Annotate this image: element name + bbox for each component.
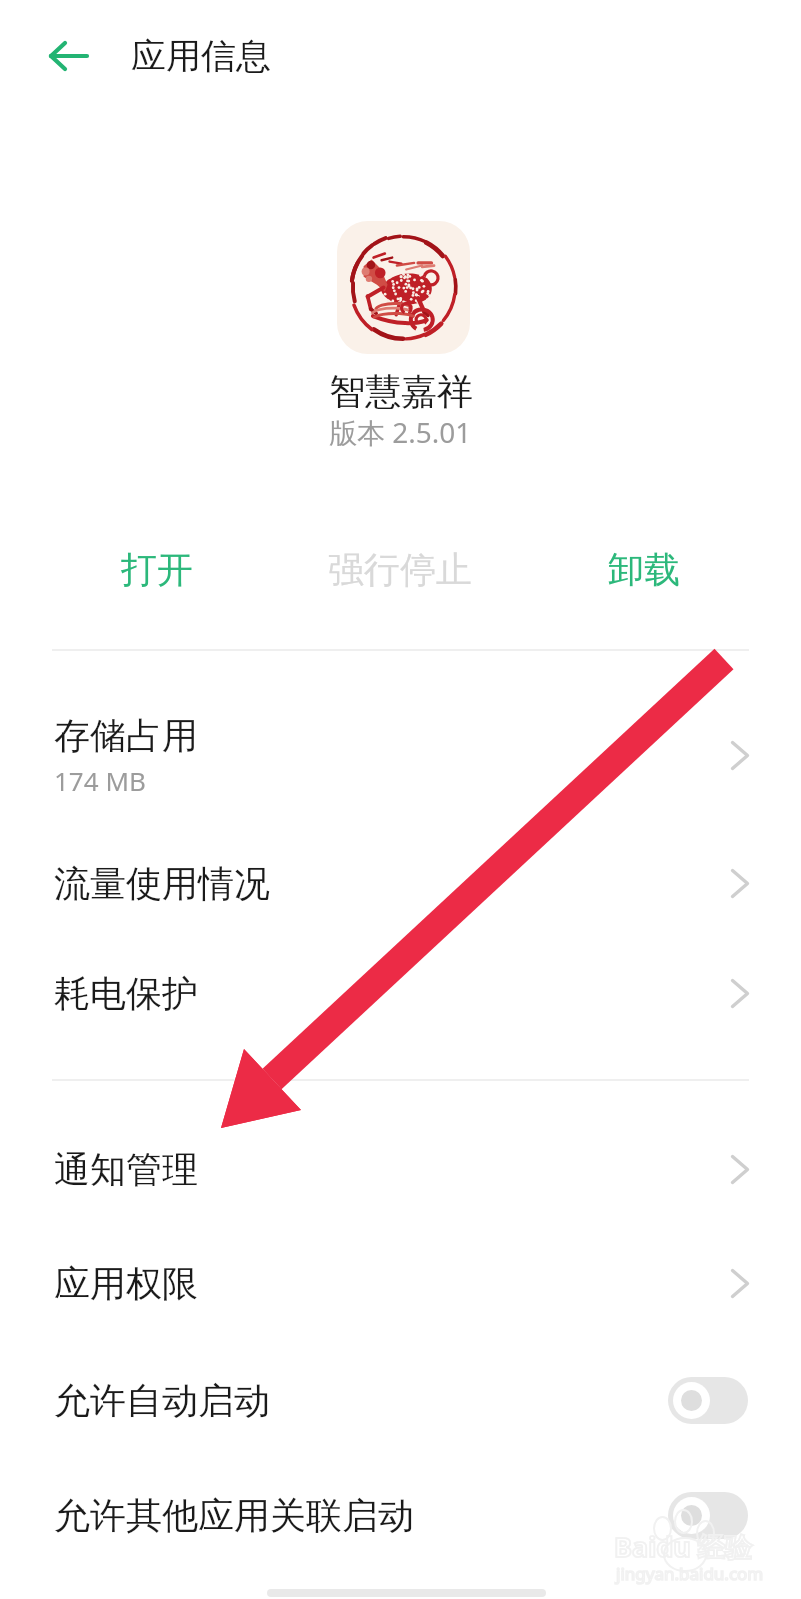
staticText: 智慧嘉祥 bbox=[329, 369, 473, 414]
button[interactable]: 存储占用 bbox=[0, 700, 801, 810]
staticText: 允许自动启动 bbox=[54, 1378, 270, 1423]
staticText: jingyan.baidu.com bbox=[616, 1562, 764, 1585]
staticText: 强行停止 bbox=[328, 547, 472, 592]
button[interactable]: 允许其他应用关联启动 bbox=[0, 1460, 801, 1570]
staticText: 允许其他应用关联启动 bbox=[54, 1493, 414, 1538]
staticText: 卸载 bbox=[608, 547, 680, 592]
staticText: 版本 2.5.01 bbox=[329, 413, 472, 451]
button[interactable]: 允许自动启动 bbox=[0, 1345, 801, 1455]
staticText: 通知管理 bbox=[54, 1147, 198, 1192]
button[interactable]: 卸载 bbox=[522, 538, 766, 600]
button[interactable]: 耗电保护 bbox=[0, 938, 801, 1048]
button[interactable]: 应用权限 bbox=[0, 1228, 801, 1338]
staticText: 流量使用情况 bbox=[54, 861, 270, 906]
staticText: 174 MB bbox=[54, 763, 146, 798]
staticText: Baidu 经验 bbox=[614, 1528, 752, 1565]
button[interactable]: 通知管理 bbox=[0, 1114, 801, 1224]
staticText: 打开 bbox=[121, 547, 193, 592]
staticText: 存储占用 bbox=[54, 713, 198, 758]
staticText: 应用权限 bbox=[54, 1261, 198, 1306]
button[interactable]: 流量使用情况 bbox=[0, 828, 801, 938]
button[interactable]: 强行停止 bbox=[278, 538, 522, 600]
staticText: 耗电保护 bbox=[54, 971, 198, 1016]
staticText: 应用信息 bbox=[131, 34, 271, 78]
button[interactable]: Back bbox=[27, 24, 91, 88]
button[interactable]: 打开 bbox=[35, 538, 278, 600]
